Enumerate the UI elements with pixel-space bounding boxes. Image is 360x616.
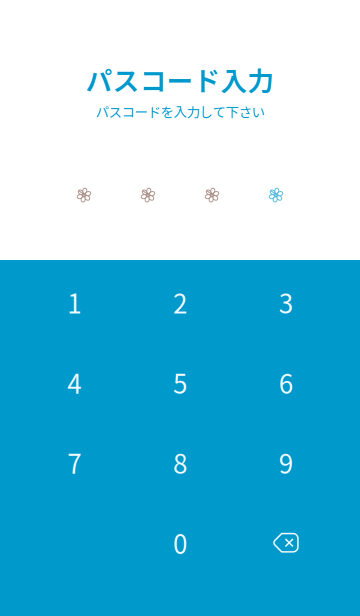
staticText: 1 <box>67 283 81 321</box>
button[interactable]: 5 <box>127 342 233 422</box>
staticText: 7 <box>67 444 81 481</box>
staticText: 6 <box>279 363 293 401</box>
button[interactable]: 6 <box>233 342 338 422</box>
staticText: 4 <box>67 363 81 401</box>
group: 1 of 4 digits entered <box>77 188 283 202</box>
staticText: 0 <box>173 524 187 561</box>
button[interactable]: 2 <box>127 262 233 342</box>
button[interactable]: 1 <box>21 262 127 342</box>
staticText: パスコード入力 <box>85 60 274 99</box>
staticText: 9 <box>279 444 293 481</box>
button[interactable]: Delete <box>233 503 338 583</box>
button[interactable]: 7 <box>21 422 127 503</box>
button[interactable]: 8 <box>127 422 233 503</box>
button[interactable]: 0 <box>127 503 233 583</box>
staticText: 2 <box>173 283 187 321</box>
button[interactable]: 3 <box>233 262 338 342</box>
staticText: 8 <box>173 444 187 481</box>
staticText: 5 <box>173 363 187 401</box>
staticText: 3 <box>279 283 293 321</box>
staticText: パスコードを入力して下さい <box>95 102 264 121</box>
button[interactable]: 9 <box>233 422 338 503</box>
button[interactable]: 4 <box>21 342 127 422</box>
